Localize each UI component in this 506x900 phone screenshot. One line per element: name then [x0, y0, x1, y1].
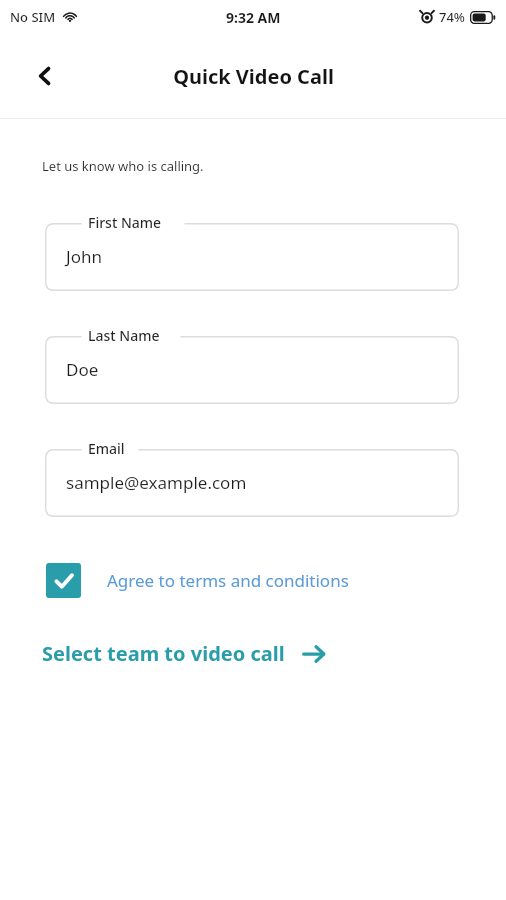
- staticText: Email: [88, 439, 125, 458]
- button[interactable]: Back: [22, 53, 68, 99]
- staticText: First Name: [88, 213, 162, 232]
- staticText: sample@example.com: [66, 471, 247, 494]
- staticText: Doe: [66, 358, 99, 381]
- staticText: Quick Video Call: [173, 63, 334, 90]
- button[interactable]: Last Name: [45, 326, 459, 404]
- button[interactable]: Select team to video call: [42, 640, 327, 667]
- staticText: Let us know who is calling.: [42, 157, 204, 175]
- button[interactable]: Agree to terms and conditions: [46, 563, 349, 598]
- staticText: Last Name: [88, 326, 160, 345]
- staticText: 74%: [439, 8, 465, 26]
- staticText: 9:32 AM: [226, 8, 281, 27]
- button[interactable]: First Name: [45, 213, 459, 291]
- staticText: Agree to terms and conditions: [107, 569, 349, 592]
- button[interactable]: Email: [45, 439, 459, 517]
- staticText: John: [66, 245, 102, 268]
- staticText: Select team to video call: [42, 640, 285, 667]
- staticText: No SIM: [10, 8, 56, 26]
